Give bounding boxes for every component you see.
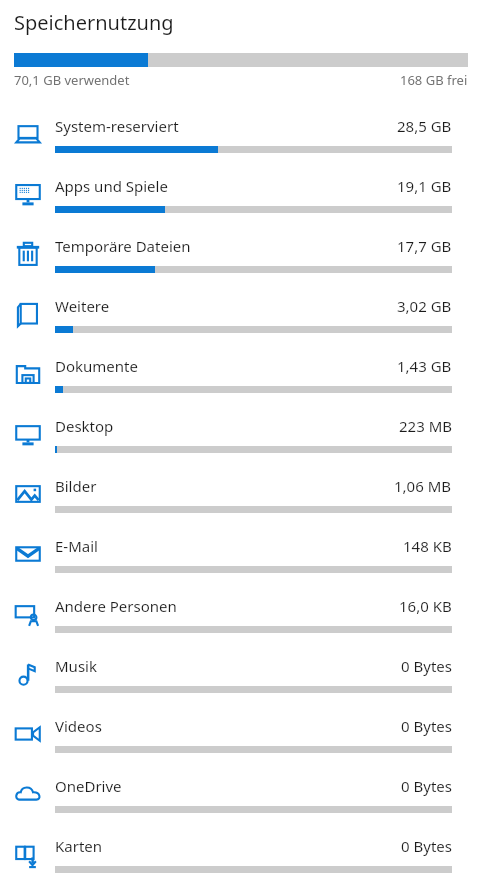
staticText: 148 KB (403, 536, 452, 556)
staticText: Temporäre Dateien (55, 236, 191, 256)
button[interactable]: System-reserviert, 28,5 GB (0, 104, 484, 164)
staticText: System-reserviert (55, 116, 179, 136)
staticText: 3,02 GB (397, 296, 452, 316)
staticText: 168 GB frei (400, 71, 468, 89)
staticText: 0 Bytes (401, 716, 452, 736)
staticText: 19,1 GB (397, 176, 452, 196)
staticText: Karten (55, 836, 103, 856)
staticText: 16,0 KB (399, 596, 452, 616)
staticText: 28,5 GB (397, 116, 452, 136)
button[interactable]: Videos, 0 Bytes (0, 704, 484, 764)
button[interactable]: Temporäre Dateien, 17,7 GB (0, 224, 484, 284)
staticText: 70,1 GB verwendet (14, 71, 130, 89)
staticText: 1,43 GB (397, 356, 452, 376)
button[interactable]: OneDrive, 0 Bytes (0, 764, 484, 824)
staticText: OneDrive (55, 776, 122, 796)
button[interactable]: Dokumente, 1,43 GB (0, 344, 484, 404)
button[interactable]: Bilder, 1,06 MB (0, 464, 484, 524)
staticText: 17,7 GB (397, 236, 452, 256)
button[interactable]: Karten, 0 Bytes (0, 824, 484, 884)
staticText: 0 Bytes (401, 776, 452, 796)
staticText: 0 Bytes (401, 656, 452, 676)
button[interactable]: Weitere, 3,02 GB (0, 284, 484, 344)
button[interactable]: E-Mail, 148 KB (0, 524, 484, 584)
staticText: Videos (55, 716, 102, 736)
staticText: 223 MB (399, 416, 452, 436)
staticText: Weitere (55, 296, 110, 316)
button[interactable]: Andere Personen, 16,0 KB (0, 584, 484, 644)
staticText: 0 Bytes (401, 836, 452, 856)
staticText: Dokumente (55, 356, 138, 376)
staticText: Apps und Spiele (55, 176, 168, 196)
button[interactable]: Apps und Spiele, 19,1 GB (0, 164, 484, 224)
staticText: Desktop (55, 416, 114, 436)
button[interactable]: Musik, 0 Bytes (0, 644, 484, 704)
staticText: Musik (55, 656, 97, 676)
button[interactable]: Desktop, 223 MB (0, 404, 484, 464)
staticText: Speichernutzung (14, 9, 174, 36)
staticText: Andere Personen (55, 596, 177, 616)
staticText: 1,06 MB (394, 476, 452, 496)
staticText: Bilder (55, 476, 97, 496)
staticText: E-Mail (55, 536, 98, 556)
